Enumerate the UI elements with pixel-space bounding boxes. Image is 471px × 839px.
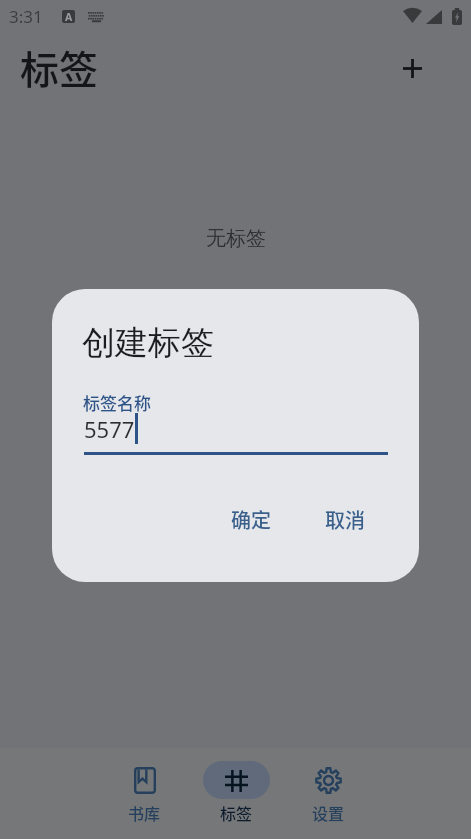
button[interactable]: Add tag: [388, 44, 436, 92]
button[interactable]: 确定: [214, 499, 288, 539]
staticText: 无标签: [206, 226, 266, 251]
staticText: 书库: [128, 801, 161, 824]
button[interactable]: 标签: [190, 748, 282, 839]
staticText: 3:31: [9, 5, 43, 28]
staticText: 标签: [20, 39, 99, 95]
staticText: 设置: [312, 801, 345, 824]
button[interactable]: 设置: [282, 748, 374, 839]
staticText: 取消: [325, 505, 365, 534]
button[interactable]: 取消: [308, 499, 382, 539]
staticText: 确定: [231, 505, 271, 534]
staticText: 标签名称: [83, 390, 151, 415]
staticText: 标签: [220, 801, 253, 824]
staticText: A: [65, 10, 73, 23]
staticText: 创建标签: [82, 322, 214, 364]
button[interactable]: 书库: [98, 748, 190, 839]
staticText: 5577: [84, 414, 135, 444]
